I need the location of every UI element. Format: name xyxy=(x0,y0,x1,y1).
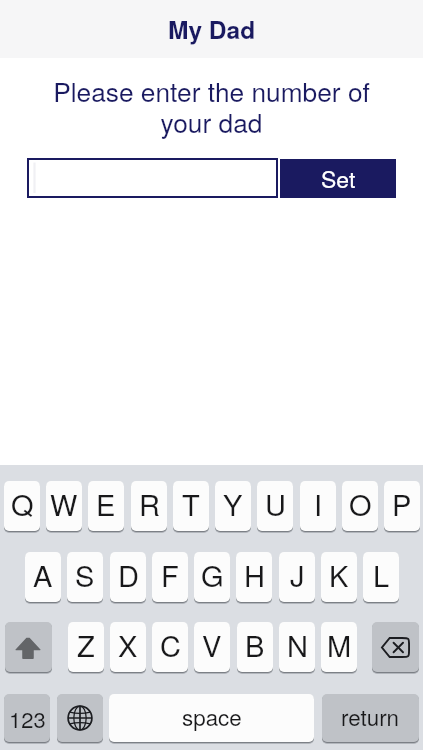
staticText: Set xyxy=(321,162,356,195)
staticText: I xyxy=(314,483,323,525)
button[interactable]: space xyxy=(109,694,314,742)
staticText: Y xyxy=(223,483,243,525)
button[interactable]: V xyxy=(194,622,230,672)
button[interactable]: W xyxy=(46,481,82,531)
staticText: J xyxy=(290,554,305,596)
button[interactable]: H xyxy=(236,552,272,602)
button[interactable]: Q xyxy=(4,481,40,531)
button[interactable]: S xyxy=(67,552,103,602)
button[interactable]: B xyxy=(237,622,273,672)
button[interactable]: K xyxy=(321,552,357,602)
staticText: D xyxy=(118,554,139,596)
staticText: L xyxy=(373,554,390,596)
staticText: return xyxy=(341,700,400,732)
button[interactable]: Z xyxy=(68,622,104,672)
button[interactable]: P xyxy=(384,481,420,531)
button[interactable]: Set xyxy=(280,159,396,198)
button[interactable]: E xyxy=(88,481,124,531)
button[interactable]: I xyxy=(300,481,336,531)
staticText: R xyxy=(139,483,160,525)
staticText: C xyxy=(160,624,181,666)
staticText: Z xyxy=(77,624,95,666)
staticText: M xyxy=(327,624,352,666)
button[interactable]: M xyxy=(321,622,357,672)
staticText: space xyxy=(182,700,242,732)
staticText: V xyxy=(202,624,222,666)
staticText: 123 xyxy=(9,703,46,735)
button[interactable]: N xyxy=(279,622,315,672)
button[interactable]: D xyxy=(110,552,146,602)
button[interactable]: Numbers xyxy=(4,694,50,742)
button[interactable]: F xyxy=(152,552,188,602)
staticText: S xyxy=(75,554,95,596)
button[interactable]: U xyxy=(257,481,293,531)
staticText: U xyxy=(265,483,286,525)
staticText: X xyxy=(118,624,138,666)
button[interactable]: A xyxy=(25,552,61,602)
button[interactable]: Y xyxy=(215,481,251,531)
button[interactable]: G xyxy=(194,552,230,602)
staticText: B xyxy=(245,624,265,666)
staticText: P xyxy=(392,483,412,525)
button[interactable] xyxy=(27,158,278,198)
staticText: A xyxy=(33,554,53,596)
button[interactable]: return xyxy=(322,694,419,742)
button[interactable]: O xyxy=(342,481,378,531)
staticText: Q xyxy=(11,483,34,525)
button[interactable]: Backspace xyxy=(372,622,419,672)
staticText: H xyxy=(244,554,265,596)
staticText: T xyxy=(182,483,200,525)
staticText: G xyxy=(201,554,224,596)
button[interactable]: C xyxy=(152,622,188,672)
button[interactable]: T xyxy=(173,481,209,531)
staticText: E xyxy=(96,483,116,525)
staticText: N xyxy=(287,624,308,666)
staticText: My Dad xyxy=(168,11,256,46)
staticText: F xyxy=(161,554,179,596)
staticText: O xyxy=(349,483,372,525)
staticText: W xyxy=(50,483,78,525)
button[interactable]: Shift xyxy=(5,622,52,672)
staticText: K xyxy=(329,554,349,596)
button[interactable]: R xyxy=(131,481,167,531)
button[interactable]: Switch keyboard xyxy=(57,694,103,742)
button[interactable]: L xyxy=(363,552,399,602)
button[interactable]: X xyxy=(110,622,146,672)
button[interactable]: J xyxy=(279,552,315,602)
staticText: Please enter the number of your dad xyxy=(48,72,375,140)
